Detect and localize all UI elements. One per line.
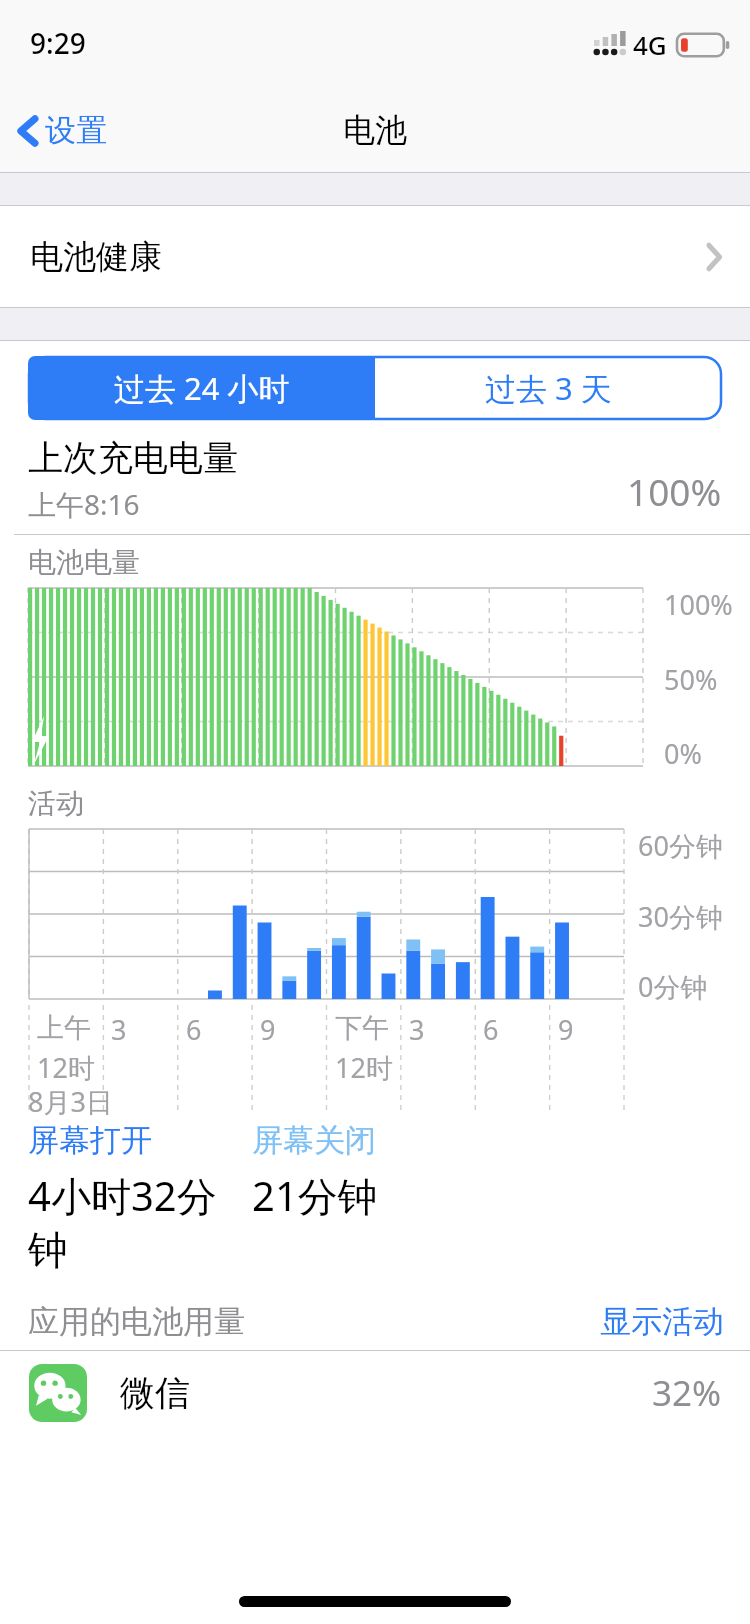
- staticText: 12时: [335, 1049, 393, 1086]
- staticText: 21分钟: [252, 1168, 378, 1223]
- staticText: 过去 3 天: [485, 367, 612, 409]
- staticText: 下午: [335, 1011, 389, 1045]
- staticText: 0%: [664, 735, 702, 772]
- staticText: 电池: [343, 110, 407, 150]
- button[interactable]: 显示活动: [574, 1296, 750, 1347]
- button[interactable]: 电池健康: [0, 206, 750, 307]
- staticText: 3: [409, 1011, 425, 1048]
- staticText: 微信: [120, 1371, 190, 1415]
- staticText: 电池电量: [28, 545, 140, 580]
- staticText: 32%: [652, 1369, 722, 1417]
- staticText: 4小时32分钟: [28, 1168, 224, 1276]
- staticText: 0分钟: [638, 968, 708, 1005]
- staticText: 9: [260, 1011, 276, 1048]
- button[interactable]: 过去 24 小时: [28, 356, 375, 420]
- staticText: 9: [558, 1011, 574, 1048]
- staticText: 过去 24 小时: [114, 367, 290, 409]
- staticText: 显示活动: [600, 1302, 724, 1341]
- staticText: 6: [483, 1011, 499, 1048]
- staticText: 9:29: [30, 24, 86, 62]
- staticText: 屏幕关闭: [252, 1121, 376, 1160]
- staticText: 100%: [664, 586, 733, 623]
- staticText: 电池健康: [30, 236, 162, 278]
- staticText: 应用的电池用量: [28, 1302, 245, 1341]
- staticText: 60分钟: [638, 827, 723, 864]
- staticText: 上午: [37, 1011, 91, 1045]
- staticText: 3: [111, 1011, 127, 1048]
- button[interactable]: 设置: [0, 99, 123, 162]
- staticText: 100%: [627, 466, 722, 516]
- staticText: 50%: [664, 661, 718, 698]
- button[interactable]: 微信: [0, 1351, 750, 1435]
- staticText: 设置: [45, 111, 107, 150]
- staticText: 上午8:16: [28, 485, 140, 523]
- staticText: 上次充电电量: [28, 436, 238, 480]
- staticText: 活动: [28, 786, 84, 821]
- staticText: 8月3日: [28, 1083, 113, 1120]
- staticText: 30分钟: [638, 898, 723, 935]
- staticText: 12时: [37, 1049, 95, 1086]
- staticText: 6: [186, 1011, 202, 1048]
- staticText: 屏幕打开: [28, 1121, 152, 1160]
- staticText: 4G: [633, 27, 667, 62]
- button[interactable]: 过去 3 天: [375, 356, 722, 420]
